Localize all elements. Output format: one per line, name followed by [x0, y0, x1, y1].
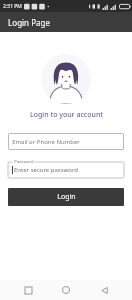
- staticText: 2:51 PM: [3, 3, 22, 10]
- staticText: Login to your account: [30, 110, 103, 120]
- staticText: Email or Phone Number: [12, 138, 80, 146]
- button[interactable]: Email or Phone Number: [8, 133, 124, 150]
- staticText: Enter secure password: [14, 166, 78, 174]
- staticText: Login: [57, 192, 76, 202]
- button[interactable]: Login: [8, 188, 124, 206]
- button[interactable]: Recent apps: [18, 280, 38, 300]
- staticText: Password: [14, 158, 34, 164]
- staticText: Login Page: [8, 17, 50, 28]
- button[interactable]: Home: [56, 280, 76, 300]
- button[interactable]: Back: [94, 280, 114, 300]
- button[interactable]: Password: [8, 159, 124, 178]
